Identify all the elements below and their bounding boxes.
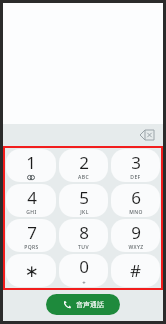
staticText: JKL (80, 209, 89, 216)
button[interactable]: 0 (59, 254, 108, 287)
button[interactable]: 9 (111, 219, 160, 252)
button[interactable]: 5 (59, 184, 108, 217)
staticText: DEF (130, 174, 141, 181)
button[interactable]: 8 (59, 219, 108, 252)
staticText: 4 (27, 186, 37, 209)
button[interactable]: ∗ (6, 254, 56, 287)
button[interactable]: 7 (6, 219, 56, 252)
staticText: + (82, 279, 86, 287)
staticText: 9 (131, 221, 141, 244)
button[interactable]: 1 (6, 149, 56, 182)
button[interactable]: 6 (111, 184, 160, 217)
button[interactable]: 3 (111, 149, 160, 182)
staticText: 5 (79, 186, 89, 209)
staticText: GHI (26, 209, 37, 216)
staticText: # (130, 259, 141, 282)
staticText: 8 (79, 221, 89, 244)
button[interactable]: Backspace (137, 127, 157, 143)
staticText: PQRS (24, 244, 39, 251)
staticText: MNO (129, 209, 143, 216)
staticText: 音声通話 (76, 300, 104, 309)
button[interactable]: 音声通話 (46, 294, 120, 315)
staticText: 1 (26, 151, 36, 174)
staticText: 0 (79, 255, 89, 278)
button[interactable]: # (111, 254, 160, 287)
staticText: ∗ (24, 261, 39, 281)
button[interactable]: 2 (59, 149, 108, 182)
staticText: WXYZ (128, 244, 144, 251)
staticText: 3 (131, 151, 141, 174)
button[interactable]: 4 (6, 184, 56, 217)
staticText: 7 (27, 221, 37, 244)
staticText: 2 (79, 151, 89, 174)
staticText: TUV (78, 244, 89, 251)
staticText: 6 (131, 186, 141, 209)
staticText: ABC (78, 174, 89, 181)
